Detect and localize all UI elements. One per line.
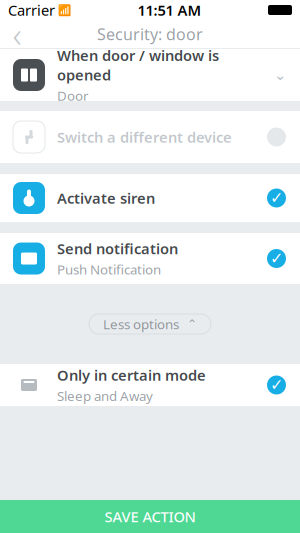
- staticText: Activate siren: [57, 188, 155, 208]
- staticText: Send notification: [57, 239, 178, 258]
- button[interactable]: Activate siren: [0, 174, 300, 222]
- staticText: Security: door: [97, 23, 203, 45]
- staticText: ‹: [12, 11, 21, 57]
- staticText: ⌃: [187, 317, 197, 331]
- staticText: ✓: [270, 189, 283, 207]
- staticText: Carrier: [8, 0, 55, 20]
- staticText: ✓: [270, 249, 283, 268]
- staticText: ✓: [270, 376, 283, 394]
- staticText: When door / window is opened: [57, 46, 219, 85]
- staticText: Push Notification: [57, 260, 161, 278]
- staticText: 11:51 AM: [137, 0, 201, 20]
- staticText: Door: [57, 87, 89, 104]
- button[interactable]: Only in certain mode: [0, 364, 300, 406]
- staticText: 📶: [58, 4, 71, 16]
- staticText: Sleep and Away: [57, 387, 153, 405]
- button[interactable]: SAVE ACTION: [0, 500, 300, 533]
- staticText: Less options: [103, 315, 179, 333]
- staticText: Only in certain mode: [57, 365, 206, 385]
- staticText: Switch a different device: [57, 127, 232, 147]
- button[interactable]: Less options: [89, 314, 211, 334]
- staticText: SAVE ACTION: [104, 507, 195, 526]
- button[interactable]: When door / window is opened: [0, 49, 300, 101]
- button[interactable]: Send notification: [0, 233, 300, 284]
- staticText: ⌄: [274, 67, 286, 83]
- button[interactable]: Back: [0, 20, 34, 48]
- button[interactable]: Switch a different device: [0, 111, 300, 163]
